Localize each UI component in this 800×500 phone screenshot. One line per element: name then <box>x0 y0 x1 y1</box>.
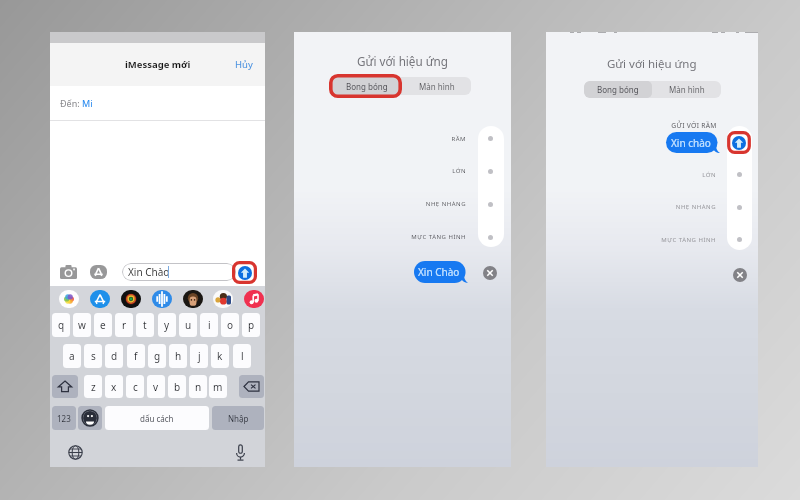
staticText: y <box>164 318 170 332</box>
button[interactable]: Memoji <box>183 290 203 308</box>
button[interactable]: Đến: <box>60 97 93 109</box>
button[interactable]: k <box>211 344 229 368</box>
staticText: Mi <box>82 97 93 109</box>
button[interactable]: y <box>158 313 176 337</box>
staticText: m <box>213 380 223 394</box>
staticText: Bong bóng <box>346 81 388 92</box>
button[interactable]: Audio <box>152 290 172 308</box>
button[interactable]: Nhập <box>212 406 264 430</box>
button[interactable]: Xin Chào <box>122 263 236 281</box>
button[interactable]: b <box>168 375 186 398</box>
button[interactable]: Bong bóng <box>584 81 652 98</box>
button[interactable]: Backspace <box>239 375 264 398</box>
button[interactable]: s <box>84 344 102 368</box>
button[interactable]: dấu cách <box>105 406 209 430</box>
staticText: NHẸ NHÀNG <box>546 203 716 211</box>
button[interactable]: r <box>115 313 133 337</box>
button[interactable]: a <box>63 344 81 368</box>
staticText: b <box>174 380 181 394</box>
staticText: Màn hình <box>669 84 705 95</box>
button[interactable]: Dictation <box>233 443 248 462</box>
button[interactable]: Bong bóng <box>332 77 401 95</box>
staticText: k <box>217 349 223 363</box>
staticText: NHẸ NHÀNG <box>294 200 466 208</box>
button[interactable]: x <box>105 375 123 398</box>
staticText: GỬI VỚI RẦM <box>644 121 744 130</box>
staticText: l <box>241 349 244 363</box>
button[interactable]: Màn hình <box>653 81 721 98</box>
staticText: x <box>111 380 117 394</box>
button[interactable]: Close <box>483 266 497 280</box>
staticText: LỚN <box>294 167 466 175</box>
button[interactable]: Màn hình <box>402 77 471 95</box>
staticText: RẦM <box>294 135 466 143</box>
button[interactable]: t <box>136 313 154 337</box>
staticText: t <box>143 318 147 332</box>
button[interactable]: Hủy <box>235 58 253 71</box>
button[interactable]: h <box>169 344 187 368</box>
button[interactable]: Shift <box>52 375 78 398</box>
staticText: f <box>134 349 138 363</box>
staticText: o <box>227 318 234 332</box>
button[interactable]: Emoji <box>78 406 102 430</box>
staticText: n <box>195 380 202 394</box>
button[interactable]: l <box>233 344 251 368</box>
button[interactable]: z <box>84 375 102 398</box>
staticText: Xin Chào <box>418 265 460 279</box>
staticText: Đến: <box>60 97 82 109</box>
button[interactable]: Close <box>733 268 747 282</box>
staticText: Xin Chào <box>128 265 170 279</box>
button[interactable]: Camera <box>60 265 77 279</box>
staticText: Nhập <box>228 413 249 424</box>
staticText: r <box>122 318 127 332</box>
staticText: iMessage mới <box>125 58 191 71</box>
button[interactable]: App Store <box>90 290 110 308</box>
staticText: d <box>111 349 118 363</box>
button[interactable]: Send <box>732 136 746 150</box>
button[interactable]: Music memo <box>121 290 141 308</box>
button[interactable]: o <box>221 313 239 337</box>
staticText: z <box>91 380 96 394</box>
staticText: s <box>91 349 96 363</box>
button[interactable]: v <box>147 375 165 398</box>
staticText: Gửi với hiệu ứng <box>357 53 449 69</box>
button[interactable]: n <box>189 375 207 398</box>
staticText: MỰC TÀNG HÌNH <box>294 233 466 241</box>
staticText: w <box>78 318 86 332</box>
staticText: u <box>185 318 192 332</box>
button[interactable]: Photo <box>213 290 233 308</box>
button[interactable]: w <box>73 313 91 337</box>
button[interactable]: g <box>148 344 166 368</box>
button[interactable]: Change language <box>68 445 83 460</box>
staticText: v <box>153 380 159 394</box>
button[interactable]: Apple Music <box>244 290 264 308</box>
staticText: Bong bóng <box>597 84 639 95</box>
button[interactable]: d <box>105 344 123 368</box>
staticText: 123 <box>57 413 71 424</box>
button[interactable]: i <box>200 313 218 337</box>
button[interactable]: p <box>242 313 260 337</box>
staticText: p <box>248 318 255 332</box>
button[interactable]: j <box>190 344 208 368</box>
button[interactable]: u <box>179 313 197 337</box>
staticText: Xin chào <box>671 136 711 150</box>
button[interactable]: Photos <box>59 290 79 308</box>
staticText: dấu cách <box>140 413 174 424</box>
staticText: c <box>133 380 138 394</box>
button[interactable]: App Store <box>90 265 107 279</box>
button[interactable]: q <box>52 313 70 337</box>
staticText: Màn hình <box>419 81 455 92</box>
staticText: g <box>154 349 161 363</box>
staticText: a <box>69 349 75 363</box>
button[interactable]: f <box>127 344 145 368</box>
button[interactable]: m <box>209 375 227 398</box>
staticText: LỚN <box>546 171 716 179</box>
staticText: j <box>198 349 201 363</box>
staticText: i <box>208 318 211 332</box>
button[interactable]: Send <box>238 266 252 280</box>
button[interactable]: Numbers <box>52 406 76 430</box>
staticText: Gửi với hiệu ứng <box>607 56 697 72</box>
staticText: e <box>100 318 106 332</box>
button[interactable]: c <box>126 375 144 398</box>
button[interactable]: e <box>94 313 112 337</box>
